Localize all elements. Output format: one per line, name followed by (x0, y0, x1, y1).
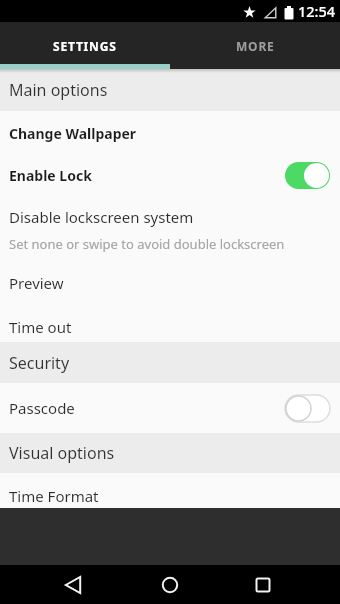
button[interactable]: Time out (0, 304, 340, 342)
staticText: SETTINGS (53, 38, 117, 54)
staticText: Disable lockscreen system (9, 207, 194, 227)
staticText: Time Format (9, 486, 99, 506)
staticText: MORE (236, 38, 275, 54)
button[interactable] (53, 565, 93, 604)
button[interactable]: Change Wallpaper (0, 111, 340, 155)
button[interactable]: Preview (0, 262, 340, 304)
button[interactable] (243, 565, 283, 604)
button[interactable] (150, 565, 190, 604)
staticText: Security (9, 352, 70, 374)
button[interactable]: Time Format (0, 473, 340, 508)
staticText: Time out (9, 317, 72, 337)
button[interactable]: MORE (170, 22, 340, 69)
staticText: Passcode (9, 398, 285, 418)
staticText: Visual options (9, 442, 115, 464)
staticText: Preview (9, 273, 64, 293)
staticText: Main options (9, 79, 108, 101)
button[interactable]: Enable Lock (0, 155, 340, 196)
button[interactable]: Disable lockscreen system (0, 196, 340, 262)
staticText: Set none or swipe to avoid double locksc… (9, 235, 285, 253)
staticText: Enable Lock (9, 166, 285, 185)
button[interactable]: Passcode (0, 383, 340, 433)
staticText: 12:54 (298, 1, 336, 21)
button[interactable]: SETTINGS (0, 22, 170, 69)
staticText: Change Wallpaper (9, 124, 137, 143)
